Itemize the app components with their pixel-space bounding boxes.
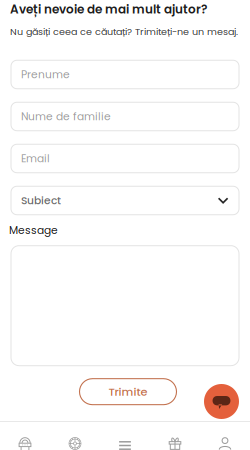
- button[interactable]: Account: [200, 422, 250, 450]
- button[interactable]: Offers: [150, 422, 200, 450]
- staticText: Nu găsiți ceea ce căutați? Trimiteți-ne …: [10, 25, 238, 38]
- staticText: Email: [21, 151, 50, 166]
- button[interactable]: Trimite: [79, 379, 176, 405]
- button[interactable]: Chat: [204, 384, 239, 419]
- button[interactable]: Subiect: [11, 186, 239, 215]
- button[interactable]: Nume de familie: [11, 102, 239, 131]
- button[interactable]: Vehicles: [0, 422, 50, 450]
- button[interactable]: Tires: [50, 422, 100, 450]
- staticText: Nume de familie: [21, 109, 111, 124]
- staticText: Trimite: [108, 384, 147, 400]
- staticText: Subiect: [21, 193, 61, 208]
- staticText: Message: [9, 223, 58, 238]
- button[interactable]: Menu: [100, 422, 150, 450]
- button[interactable]: Email: [11, 144, 239, 173]
- staticText: Aveți nevoie de mai mult ajutor?: [10, 1, 207, 18]
- staticText: Prenume: [21, 67, 70, 82]
- button[interactable]: Prenume: [11, 60, 239, 89]
